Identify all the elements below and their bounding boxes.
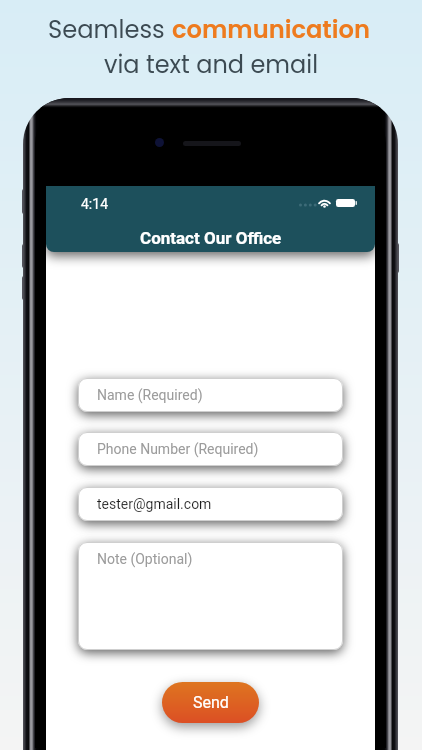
staticText: Phone Number (Required) <box>97 441 259 457</box>
button[interactable]: tester@gmail.com <box>78 487 343 521</box>
button[interactable]: Send <box>162 682 259 723</box>
staticText: via text and email <box>104 48 319 82</box>
staticText: Seamless <box>48 13 172 47</box>
staticText: Note (Optional) <box>97 551 193 567</box>
button[interactable]: Name (Required) <box>78 378 343 412</box>
staticText: Name (Required) <box>97 387 203 403</box>
staticText: Send <box>193 693 229 712</box>
staticText: 4:14 <box>81 196 108 212</box>
button[interactable]: Note (Optional) <box>78 542 343 650</box>
button[interactable]: Phone Number (Required) <box>78 432 343 466</box>
staticText: Contact Our Office <box>140 228 282 248</box>
staticText: communication <box>172 13 370 47</box>
staticText: tester@gmail.com <box>97 496 212 512</box>
